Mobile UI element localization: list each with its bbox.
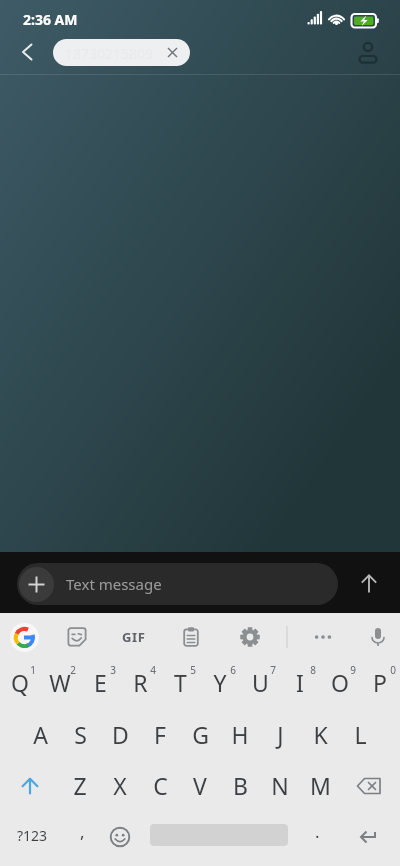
- staticText: R: [133, 667, 148, 698]
- staticText: P: [373, 667, 387, 698]
- staticText: 7: [270, 663, 276, 677]
- staticText: E: [94, 667, 107, 698]
- button[interactable]: Emoji: [100, 812, 140, 862]
- staticText: N: [271, 770, 289, 801]
- staticText: A: [33, 719, 48, 750]
- button[interactable]: V: [180, 760, 220, 811]
- button[interactable]: Attach: [19, 567, 54, 602]
- button[interactable]: Keyboard tool: [360, 619, 396, 655]
- staticText: O: [331, 667, 349, 698]
- button[interactable]: ,: [62, 810, 102, 860]
- staticText: .: [315, 820, 320, 843]
- staticText: 2: [70, 663, 76, 677]
- button[interactable]: G: [180, 709, 220, 760]
- button[interactable]: Attach: [17, 563, 338, 605]
- staticText: C: [153, 770, 168, 801]
- staticText: 5: [190, 663, 196, 677]
- button[interactable]: Keyboard tool: [173, 619, 209, 655]
- button[interactable]: Y: [200, 657, 240, 708]
- button[interactable]: ?123: [6, 810, 58, 860]
- button[interactable]: B: [220, 760, 260, 811]
- button[interactable]: Contact details: [351, 35, 385, 69]
- button[interactable]: Back: [10, 35, 44, 69]
- staticText: Y: [213, 667, 227, 698]
- staticText: Q: [11, 667, 29, 698]
- button[interactable]: L: [340, 709, 380, 760]
- button[interactable]: C: [140, 760, 180, 811]
- button[interactable]: S: [60, 709, 100, 760]
- staticText: GIF: [122, 628, 146, 646]
- button[interactable]: N: [260, 760, 300, 811]
- staticText: G: [192, 719, 209, 750]
- staticText: M: [310, 770, 331, 801]
- staticText: 8: [310, 663, 316, 677]
- staticText: V: [193, 770, 207, 801]
- staticText: Z: [73, 770, 87, 801]
- staticText: 9: [350, 663, 356, 677]
- button[interactable]: F: [140, 709, 180, 760]
- button[interactable]: E: [80, 657, 120, 708]
- button[interactable]: Shift: [0, 760, 60, 811]
- button[interactable]: K: [300, 709, 340, 760]
- staticText: 2:36 AM: [23, 10, 78, 29]
- staticText: B: [233, 770, 248, 801]
- staticText: ?123: [17, 826, 48, 845]
- button[interactable]: P: [360, 657, 400, 708]
- button[interactable]: Enter: [340, 813, 396, 863]
- staticText: D: [112, 719, 129, 750]
- staticText: I: [296, 667, 304, 698]
- button[interactable]: M: [300, 760, 340, 811]
- staticText: J: [277, 719, 284, 750]
- staticText: 4: [150, 663, 156, 677]
- staticText: W: [49, 667, 71, 698]
- staticText: S: [74, 719, 87, 750]
- button[interactable]: Z: [60, 760, 100, 811]
- button[interactable]: Google search: [6, 619, 42, 655]
- button[interactable]: .: [297, 810, 337, 860]
- button[interactable]: J: [260, 709, 300, 760]
- button[interactable]: Send: [349, 564, 389, 604]
- button[interactable]: 18730215809: [53, 39, 190, 66]
- button[interactable]: Backspace: [340, 760, 398, 811]
- button[interactable]: W: [40, 657, 80, 708]
- button[interactable]: U: [240, 657, 280, 708]
- button[interactable]: I: [280, 657, 320, 708]
- button[interactable]: O: [320, 657, 360, 708]
- button[interactable]: Keyboard tool: [59, 619, 95, 655]
- button[interactable]: Keyboard tool: [232, 619, 268, 655]
- button[interactable]: Q: [0, 657, 40, 708]
- staticText: 6: [230, 663, 236, 677]
- button[interactable]: T: [160, 657, 200, 708]
- button[interactable]: H: [220, 709, 260, 760]
- staticText: U: [252, 667, 269, 698]
- staticText: K: [313, 719, 328, 750]
- staticText: 1: [30, 663, 36, 677]
- button[interactable]: Keyboard tool: [305, 619, 341, 655]
- staticText: ,: [80, 820, 85, 843]
- button[interactable]: D: [100, 709, 140, 760]
- button[interactable]: R: [120, 657, 160, 708]
- staticText: T: [174, 667, 187, 698]
- button[interactable]: X: [100, 760, 140, 811]
- staticText: F: [154, 719, 166, 750]
- staticText: X: [113, 770, 127, 801]
- staticText: H: [231, 719, 249, 750]
- button[interactable]: GIF: [116, 619, 152, 655]
- staticText: 0: [390, 663, 396, 677]
- button[interactable]: A: [20, 709, 60, 760]
- staticText: Text message: [66, 574, 162, 594]
- staticText: L: [354, 719, 367, 750]
- staticText: 3: [110, 663, 116, 677]
